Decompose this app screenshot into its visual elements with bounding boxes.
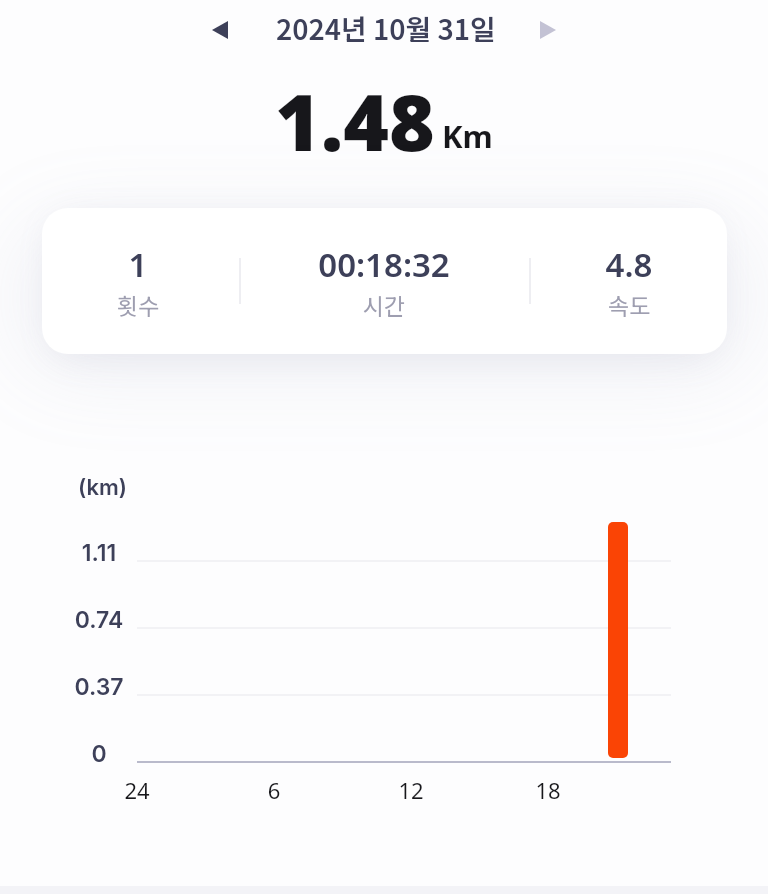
staticText: 속도 (539, 288, 719, 321)
staticText: 1.11 (39, 539, 159, 567)
staticText: 24 (87, 775, 187, 805)
staticText: 시간 (294, 288, 474, 321)
button[interactable]: Next day (524, 6, 571, 53)
staticText: 00:18:32 (294, 242, 474, 287)
staticText: 18 (498, 775, 598, 805)
staticText: 0.37 (39, 673, 159, 701)
staticText: Km (442, 115, 493, 157)
staticText: 1.48 (275, 68, 435, 174)
button[interactable]: 1 (48, 242, 228, 321)
staticText: 1 (48, 242, 228, 287)
staticText: 0 (39, 740, 159, 768)
staticText: 12 (361, 775, 461, 805)
button[interactable]: Previous day (196, 6, 243, 53)
staticText: (km) (78, 474, 128, 501)
staticText: 4.8 (539, 242, 719, 287)
staticText: 2024년 10월 31일 (276, 8, 496, 49)
button[interactable]: 00:18:32 (294, 242, 474, 321)
staticText: 6 (224, 775, 324, 805)
staticText: 횟수 (48, 288, 228, 321)
staticText: 0.74 (39, 606, 159, 634)
button[interactable]: 4.8 (539, 242, 719, 321)
